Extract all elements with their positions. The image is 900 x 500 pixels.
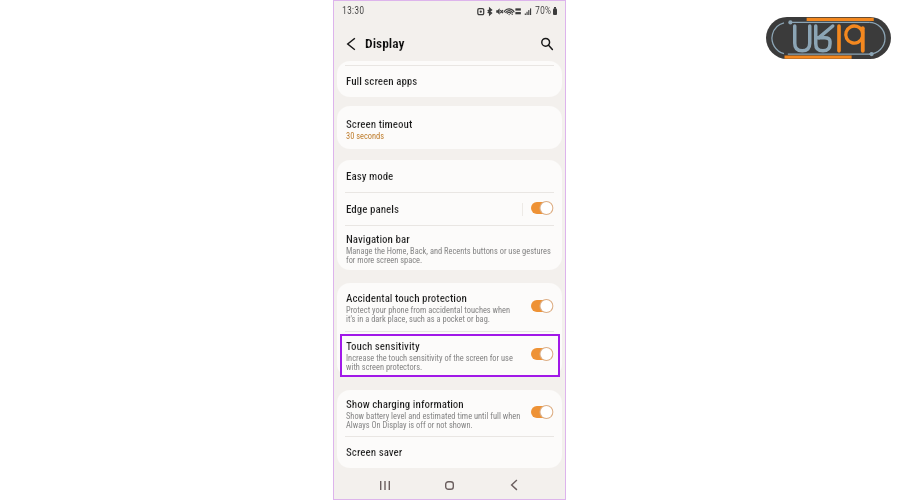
staticText: Display bbox=[365, 35, 405, 51]
staticText: Manage the Home, Back, and Recents butto… bbox=[346, 246, 553, 265]
button[interactable]: Edge panels bbox=[337, 193, 562, 225]
button[interactable]: Touch sensitivity toggle bbox=[531, 347, 553, 361]
button[interactable]: Show charging information toggle bbox=[531, 405, 553, 419]
button[interactable]: Navigation bar bbox=[337, 226, 562, 270]
staticText: Full screen apps bbox=[346, 75, 553, 88]
staticText: 13:30 bbox=[342, 5, 365, 17]
button[interactable]: Show charging information bbox=[337, 390, 562, 436]
button[interactable]: Screen timeout bbox=[337, 106, 562, 149]
button[interactable]: Navigate up bbox=[341, 31, 361, 55]
staticText: Navigation bar bbox=[346, 233, 410, 246]
staticText: Easy mode bbox=[346, 170, 553, 183]
staticText: Screen timeout bbox=[346, 118, 413, 131]
button[interactable]: Touch sensitivity bbox=[337, 332, 562, 377]
button[interactable]: Accidental touch protection bbox=[337, 283, 562, 331]
button[interactable]: Back bbox=[499, 468, 529, 500]
button[interactable]: Recents bbox=[370, 468, 400, 500]
staticText: Touch sensitivity bbox=[346, 340, 420, 353]
button[interactable]: Easy mode bbox=[337, 160, 562, 192]
staticText: Show charging information bbox=[346, 398, 464, 411]
staticText: Edge panels bbox=[346, 203, 399, 216]
staticText: Increase the touch sensitivity of the sc… bbox=[346, 353, 521, 372]
staticText: 30 seconds bbox=[346, 131, 385, 141]
button[interactable]: Search bbox=[536, 32, 558, 54]
staticText: Protect your phone from accidental touch… bbox=[346, 305, 521, 324]
staticText: Show battery level and estimated time un… bbox=[346, 411, 521, 430]
button[interactable]: Home bbox=[434, 468, 464, 500]
button[interactable]: UK19 logo bbox=[766, 17, 891, 59]
staticText: Accidental touch protection bbox=[346, 292, 467, 305]
button[interactable]: Full screen apps bbox=[337, 66, 562, 97]
button[interactable]: Accidental touch protection toggle bbox=[531, 299, 553, 313]
button[interactable]: Edge panels toggle bbox=[531, 201, 553, 215]
button[interactable]: Screen saver bbox=[337, 437, 562, 468]
staticText: Screen saver bbox=[346, 446, 553, 459]
staticText: 70% bbox=[535, 5, 552, 17]
